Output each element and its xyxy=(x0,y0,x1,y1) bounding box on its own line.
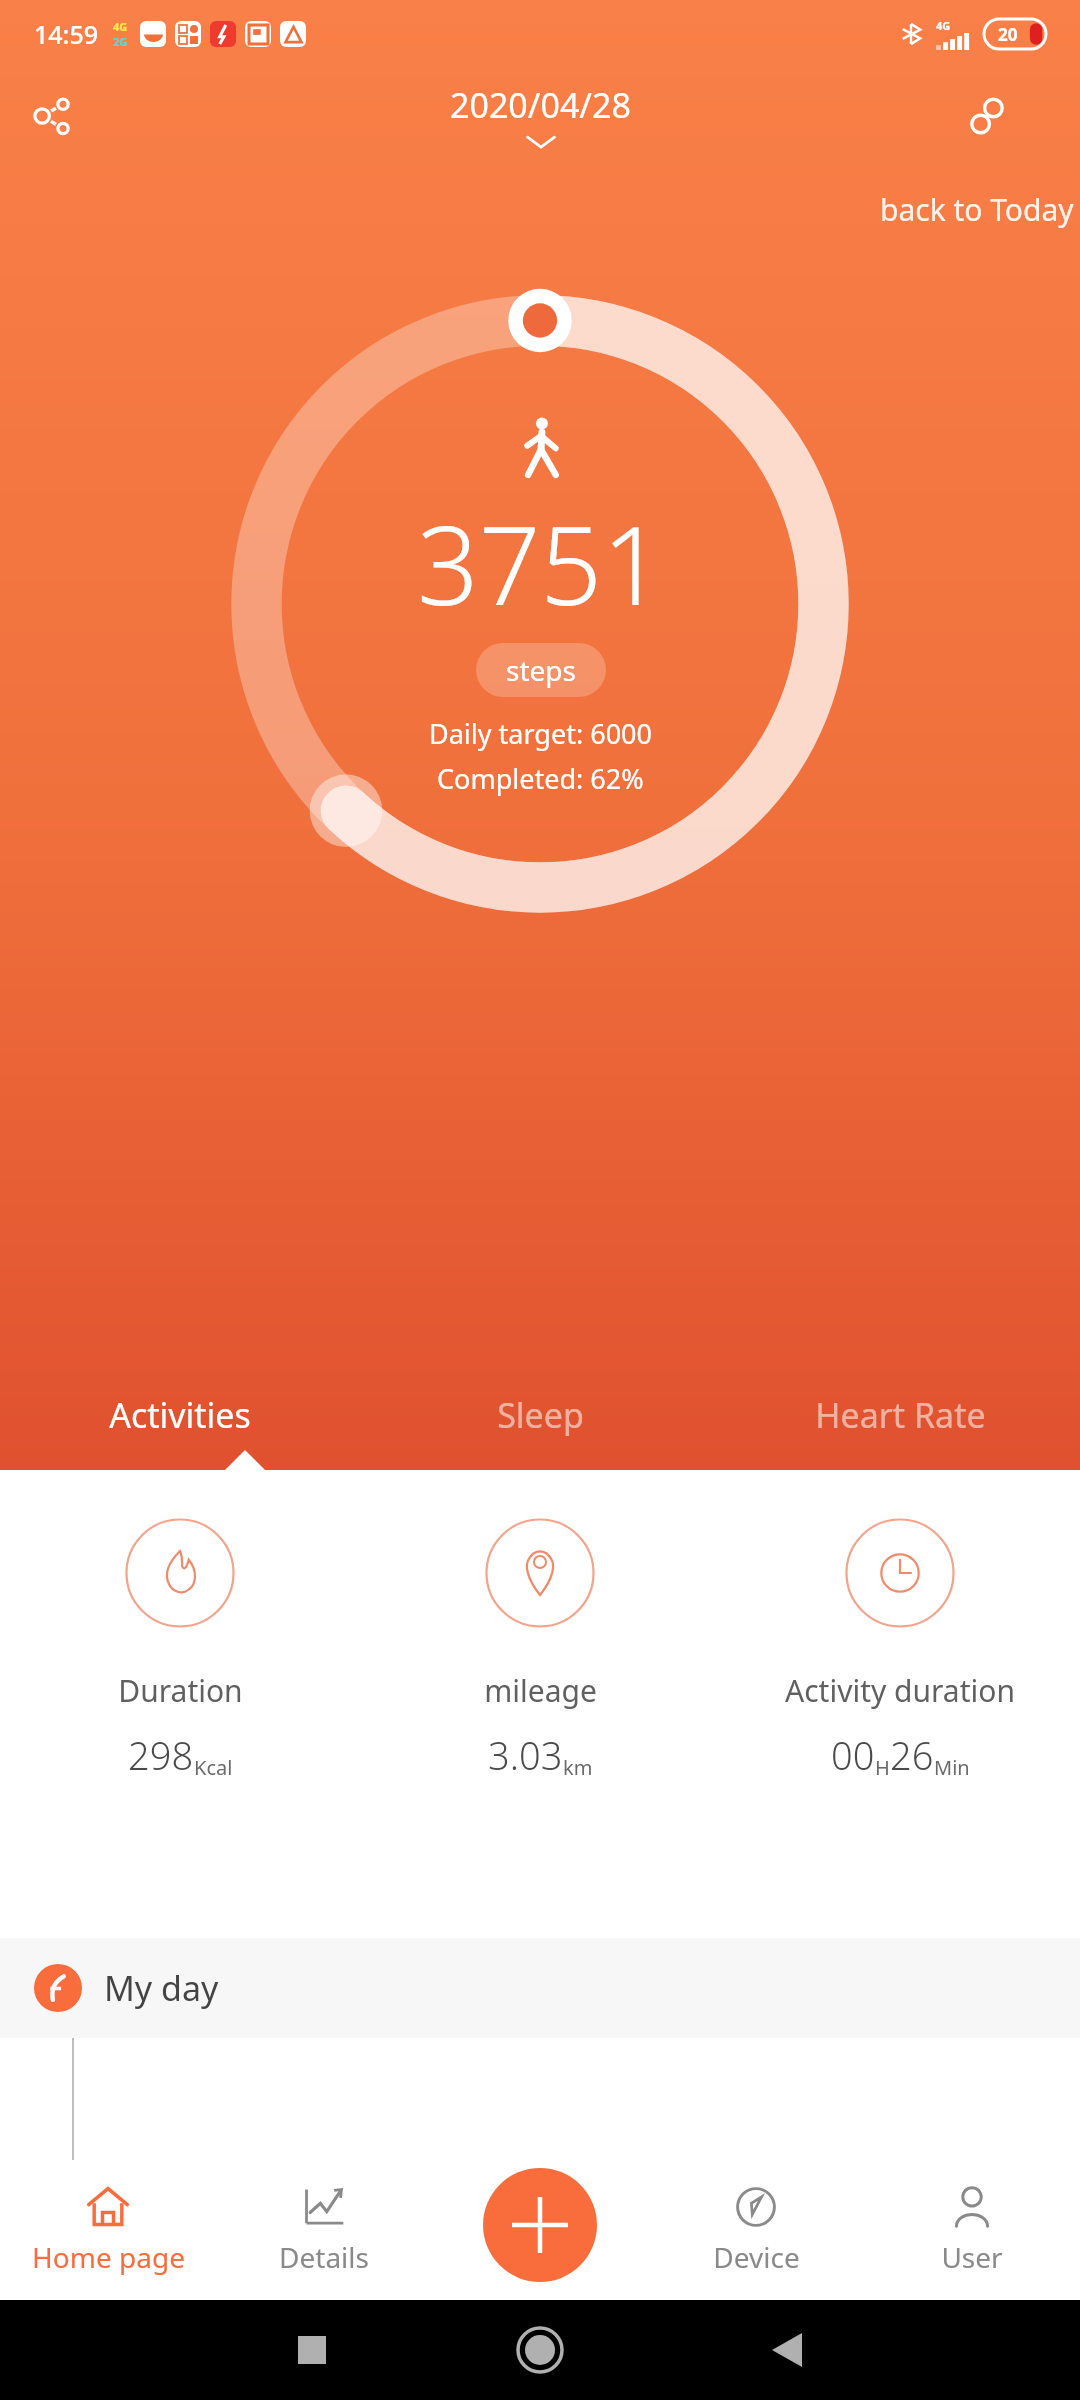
button[interactable]: 3751 xyxy=(190,254,890,954)
staticText: 2020/04/28 xyxy=(450,82,631,128)
button[interactable]: Duration xyxy=(0,1518,360,1781)
staticText: Heart Rate xyxy=(815,1392,986,1438)
staticText: back to Today xyxy=(880,189,1074,230)
button[interactable]: My day xyxy=(0,1938,1080,2038)
staticText: Sleep xyxy=(497,1392,584,1438)
staticText: steps xyxy=(506,651,576,689)
staticText: 298 xyxy=(128,1729,194,1781)
staticText: Min xyxy=(934,1754,970,1781)
staticText: 2G xyxy=(113,34,128,49)
staticText: User xyxy=(941,2238,1003,2276)
staticText: km xyxy=(563,1754,593,1781)
staticText: 00 xyxy=(831,1729,875,1781)
staticText: Kcal xyxy=(194,1754,233,1781)
staticText: Details xyxy=(279,2238,369,2276)
staticText: mileage xyxy=(484,1670,597,1711)
staticText: Home page xyxy=(32,2238,185,2276)
button[interactable]: 2020/04/28 xyxy=(450,82,631,150)
button[interactable]: Connect device xyxy=(955,84,1019,148)
button[interactable]: Home page xyxy=(0,2160,216,2300)
staticText: H xyxy=(875,1754,890,1781)
button[interactable]: Device xyxy=(648,2160,864,2300)
staticText: Activity duration xyxy=(785,1670,1015,1711)
staticText: 14:59 xyxy=(34,17,99,51)
staticText: 4G xyxy=(936,18,951,33)
button[interactable]: mileage xyxy=(360,1518,720,1781)
button[interactable]: Sleep xyxy=(360,1360,720,1470)
staticText: 20 xyxy=(998,23,1018,46)
staticText: My day xyxy=(104,1965,219,2011)
staticText: Activities xyxy=(109,1392,251,1438)
staticText: 3.03 xyxy=(488,1729,563,1781)
button[interactable]: Activities xyxy=(0,1360,360,1470)
staticText: Completed: 62% xyxy=(437,760,644,797)
button[interactable]: Share xyxy=(20,84,84,148)
staticText: 26 xyxy=(890,1729,934,1781)
staticText: 4G xyxy=(113,19,128,34)
button[interactable]: Activity duration xyxy=(720,1518,1080,1781)
staticText: Duration xyxy=(118,1670,243,1711)
button[interactable]: Add xyxy=(483,2168,597,2282)
staticText: Daily target: 6000 xyxy=(429,715,652,752)
button[interactable]: Heart Rate xyxy=(720,1360,1080,1470)
button[interactable]: User xyxy=(864,2160,1080,2300)
staticText: 3751 xyxy=(417,490,664,637)
staticText: Device xyxy=(713,2238,800,2276)
button[interactable]: back to Today xyxy=(874,181,1080,238)
button[interactable]: Details xyxy=(216,2160,432,2300)
